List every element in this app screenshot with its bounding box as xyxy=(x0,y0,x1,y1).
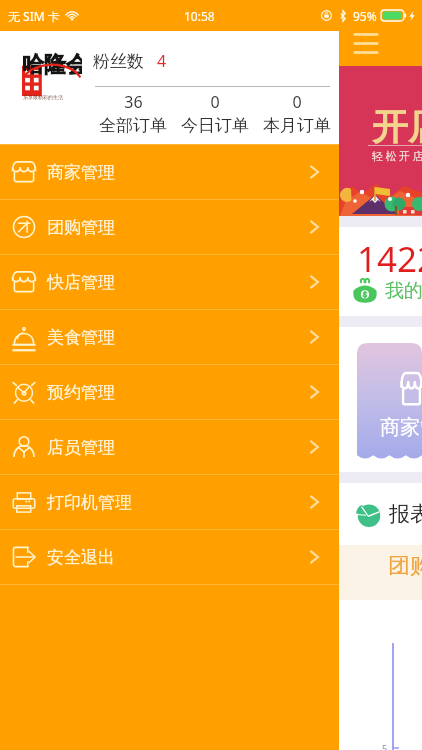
staticText: 0 xyxy=(210,91,220,113)
staticText: 我的余额 xyxy=(385,279,422,303)
button[interactable]: 0 xyxy=(174,91,256,136)
staticText: 预约管理 xyxy=(47,382,115,403)
button[interactable]: 报表统计 xyxy=(356,501,422,527)
button[interactable]: 打印机管理 xyxy=(0,475,339,529)
staticText: 团购 xyxy=(388,552,422,580)
staticText: 美食管理 xyxy=(47,327,115,348)
button[interactable]: 商家管理 xyxy=(0,145,339,199)
button[interactable]: 商家管理 xyxy=(357,343,422,460)
staticText: 5 xyxy=(382,742,388,750)
staticText: 1422 xyxy=(357,235,422,283)
staticText: 全部订单 xyxy=(99,115,167,136)
staticText: 报表统计 xyxy=(389,501,422,527)
button[interactable]: 预约管理 xyxy=(0,365,339,419)
staticText: 无 SIM 卡 xyxy=(8,8,60,24)
staticText: 0 xyxy=(292,91,302,113)
staticText: 哈隆会 xyxy=(22,51,82,79)
staticText: 95% xyxy=(353,8,377,24)
button[interactable]: 美食管理 xyxy=(0,310,339,364)
button[interactable]: 店员管理 xyxy=(0,420,339,474)
staticText: 打印机管理 xyxy=(47,492,132,513)
staticText: 乐享最精彩的生活 xyxy=(23,94,63,100)
staticText: 轻松开店啦 xyxy=(372,149,422,163)
staticText: 4 xyxy=(157,50,167,72)
staticText: 安全退出 xyxy=(47,547,115,568)
staticText: 开店啦 xyxy=(372,104,422,149)
button[interactable]: 安全退出 xyxy=(0,530,339,584)
staticText: 本月订单 xyxy=(263,115,331,136)
staticText: 商家管理 xyxy=(47,162,115,183)
button[interactable]: 快店管理 xyxy=(0,255,339,309)
staticText: 快店管理 xyxy=(47,272,115,293)
staticText: 36 xyxy=(124,91,143,113)
staticText: 店员管理 xyxy=(47,437,115,458)
staticText: 粉丝数 xyxy=(93,51,144,72)
button[interactable]: 0 xyxy=(256,91,338,136)
button[interactable]: 团购 xyxy=(388,552,422,592)
button[interactable]: Menu xyxy=(348,26,384,60)
staticText: 商家管理 xyxy=(380,415,422,440)
button[interactable]: 36 xyxy=(92,91,174,136)
button[interactable]: 团购管理 xyxy=(0,200,339,254)
staticText: 团购管理 xyxy=(47,217,115,238)
staticText: 今日订单 xyxy=(181,115,249,136)
staticText: 10:58 xyxy=(184,8,215,24)
